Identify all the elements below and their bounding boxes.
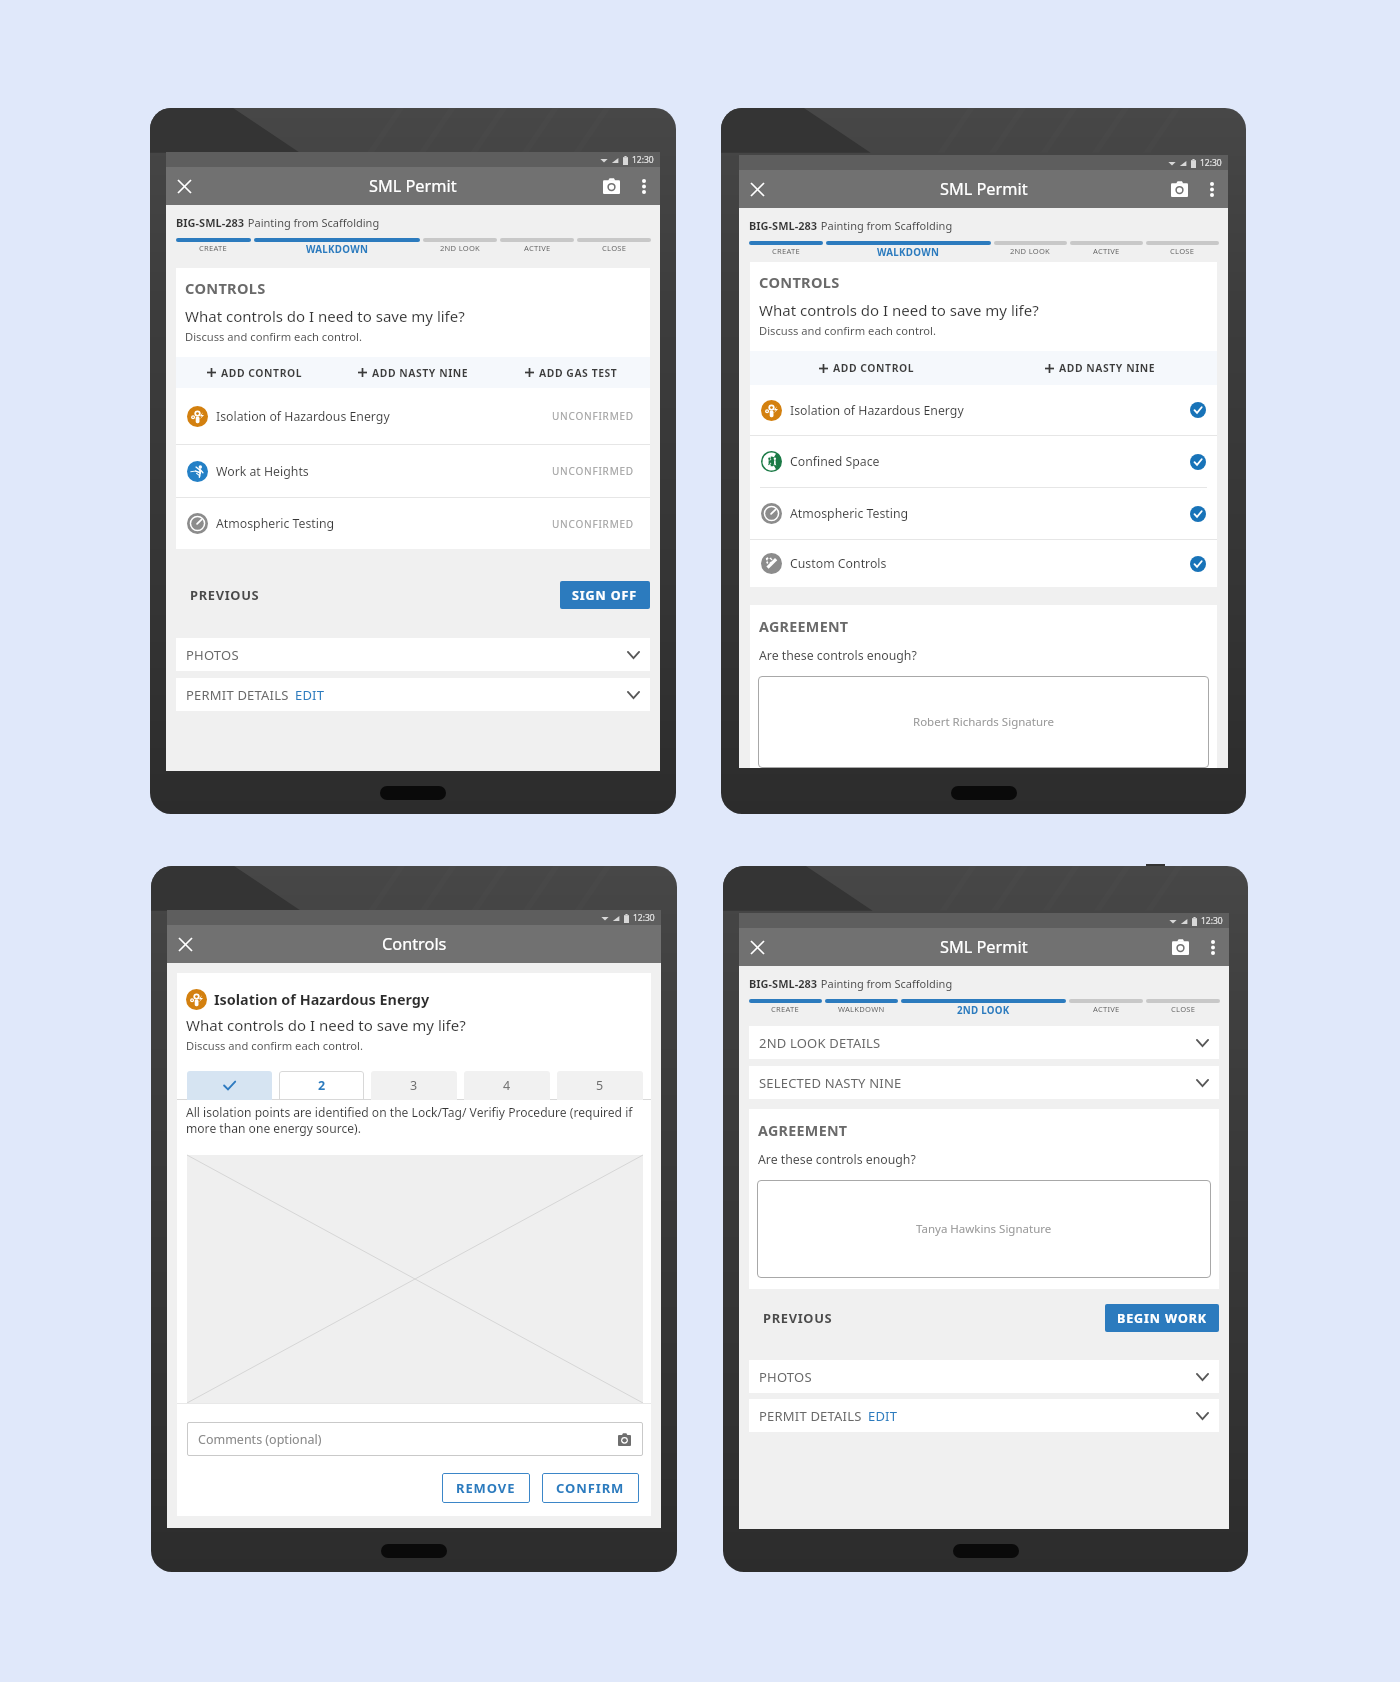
staticText: Discuss and confirm each control. [186,1038,363,1053]
button[interactable]: WALKDOWN [826,241,991,259]
staticText: PHOTOS [759,1368,812,1386]
staticText: All isolation points are identified on t… [186,1104,644,1136]
button[interactable]: PERMIT DETAILS [176,678,650,711]
button[interactable]: Camera [594,169,628,203]
button[interactable]: 3 [371,1071,457,1100]
staticText: SML Permit [369,175,457,197]
staticText: Atmospheric Testing [790,505,909,522]
button[interactable]: Close [743,175,771,203]
button[interactable]: CONFIRM [542,1473,639,1503]
button[interactable]: ACTIVE [1070,241,1143,256]
button[interactable]: PERMIT DETAILS [749,1399,1219,1432]
staticText: REMOVE [456,1479,516,1497]
button[interactable]: CREATE [749,999,822,1014]
staticText: BEGIN WORK [1117,1310,1207,1327]
staticText: ADD NASTY NINE [1059,361,1156,375]
button[interactable]: Camera [1163,930,1197,964]
staticText: BIG-SML-283 [749,218,818,233]
button[interactable]: Atmospheric Testing [750,488,1217,539]
button[interactable]: CLOSE [1146,999,1220,1014]
button[interactable]: ADD CONTROL [750,351,983,385]
staticText: EDIT [295,686,325,704]
button[interactable]: Atmospheric Testing [176,498,650,549]
button[interactable]: 2ND LOOK DETAILS [749,1026,1219,1059]
staticText: What controls do I need to save my life? [185,306,465,326]
button[interactable]: PREVIOUS [190,586,260,604]
staticText: CREATE [772,246,801,256]
staticText: ADD CONTROL [221,366,303,380]
button[interactable]: More options [628,170,660,202]
button[interactable]: Close [743,933,771,961]
staticText: ACTIVE [1093,246,1120,256]
staticText: PERMIT DETAILS [186,686,289,704]
staticText: Work at Heights [216,463,309,480]
button[interactable]: 2ND LOOK [994,241,1067,256]
button[interactable]: WALKDOWN [825,999,898,1014]
button[interactable]: CREATE [176,238,251,253]
button[interactable]: Confined Space [750,436,1217,487]
staticText: Controls [382,933,447,955]
button[interactable]: CREATE [749,241,823,256]
staticText: What controls do I need to save my life? [759,300,1039,320]
button[interactable]: More options [1197,931,1229,963]
staticText: Custom Controls [790,555,887,572]
button[interactable]: Camera [1162,172,1196,206]
button[interactable]: Close [171,930,199,958]
staticText: Robert Richards Signature [913,714,1055,730]
button[interactable]: CLOSE [1146,241,1219,256]
button[interactable]: Isolation of Hazardous Energy [176,388,650,444]
button[interactable]: 5 [557,1071,643,1100]
staticText: Isolation of Hazardous Energy [216,408,390,425]
staticText: 5 [596,1077,604,1094]
staticText: PERMIT DETAILS [759,1407,862,1425]
button[interactable]: REMOVE [442,1473,530,1503]
staticText: UNCONFIRMED [552,409,634,423]
button[interactable]: 2 [279,1071,364,1100]
staticText: 12:30 [633,912,655,924]
staticText: CLOSE [1170,246,1195,256]
button[interactable]: SELECTED NASTY NINE [749,1066,1219,1099]
staticText: UNCONFIRMED [552,517,634,531]
button[interactable]: ADD CONTROL [176,357,334,388]
button[interactable]: ADD NASTY NINE [983,351,1217,385]
staticText: Are these controls enough? [759,647,917,664]
button[interactable]: More options [1196,173,1228,205]
button[interactable]: PHOTOS [176,638,650,671]
button[interactable]: Work at Heights [176,445,650,497]
staticText: WALKDOWN [838,1004,885,1014]
staticText: 4 [503,1077,511,1094]
button[interactable]: PREVIOUS [763,1309,833,1327]
button[interactable]: Add photo [614,1429,634,1449]
staticText: Comments (optional) [198,1431,322,1448]
button[interactable]: ADD NASTY NINE [334,357,492,388]
staticText: Discuss and confirm each control. [185,329,362,344]
button[interactable]: PHOTOS [749,1360,1219,1393]
staticText: Discuss and confirm each control. [759,323,936,338]
button[interactable]: Isolation of Hazardous Energy [750,385,1217,435]
button[interactable]: 2ND LOOK [423,238,497,253]
staticText: CLOSE [1171,1004,1196,1014]
button[interactable]: CLOSE [577,238,651,253]
staticText: Painting from Scaffolding [818,976,953,991]
staticText: Atmospheric Testing [216,515,335,532]
staticText: 2 [318,1077,326,1094]
staticText: SIGN OFF [572,587,638,604]
button[interactable]: 4 [464,1071,550,1100]
button[interactable]: Custom Controls [750,540,1217,587]
button[interactable]: BEGIN WORK [1105,1304,1219,1332]
button[interactable]: ADD GAS TEST [492,357,650,388]
staticText: What controls do I need to save my life? [186,1015,466,1035]
staticText: Painting from Scaffolding [818,218,953,233]
staticText: PHOTOS [186,646,239,664]
staticText: 2ND LOOK [957,1004,1010,1017]
button[interactable]: Close [170,172,198,200]
button[interactable]: SIGN OFF [560,581,650,609]
button[interactable]: ACTIVE [500,238,574,253]
button[interactable]: 2ND LOOK [901,999,1066,1017]
button[interactable] [187,1071,272,1100]
staticText: 2ND LOOK [1010,246,1051,256]
button[interactable]: WALKDOWN [254,238,420,256]
staticText: SELECTED NASTY NINE [759,1074,902,1092]
staticText: 3 [410,1077,418,1094]
button[interactable]: ACTIVE [1069,999,1143,1014]
